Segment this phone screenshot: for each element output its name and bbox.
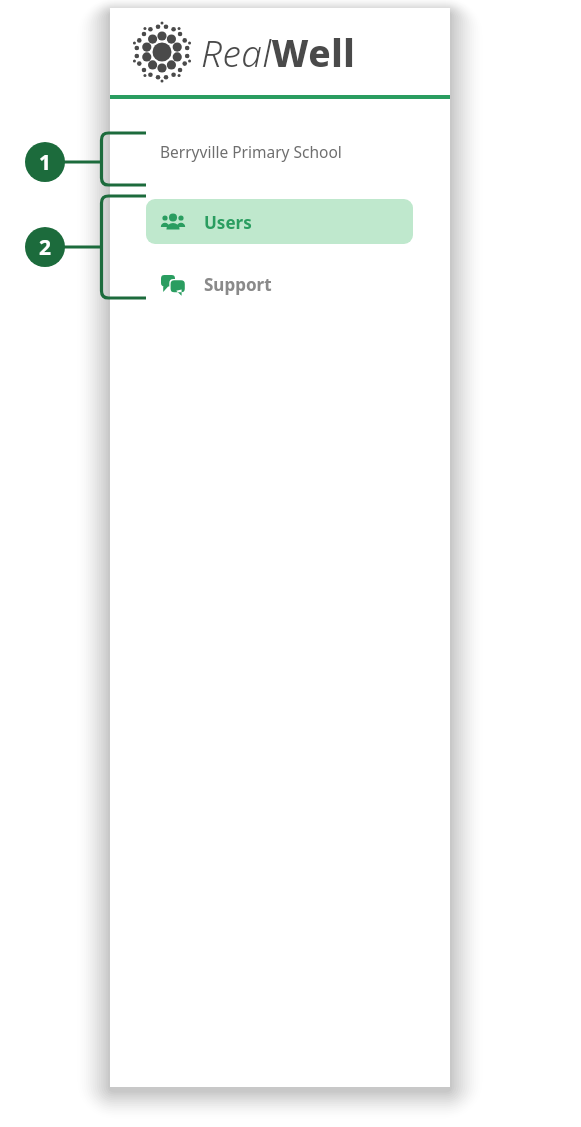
button[interactable]: Users bbox=[146, 199, 413, 244]
staticText: Users bbox=[204, 211, 252, 234]
staticText: Support bbox=[204, 273, 272, 296]
button[interactable]: Support bbox=[146, 261, 413, 306]
staticText: 2 bbox=[39, 233, 52, 262]
staticText: RealWell bbox=[201, 27, 356, 77]
staticText: 1 bbox=[39, 148, 52, 177]
staticText: Berryville Primary School bbox=[160, 141, 342, 162]
